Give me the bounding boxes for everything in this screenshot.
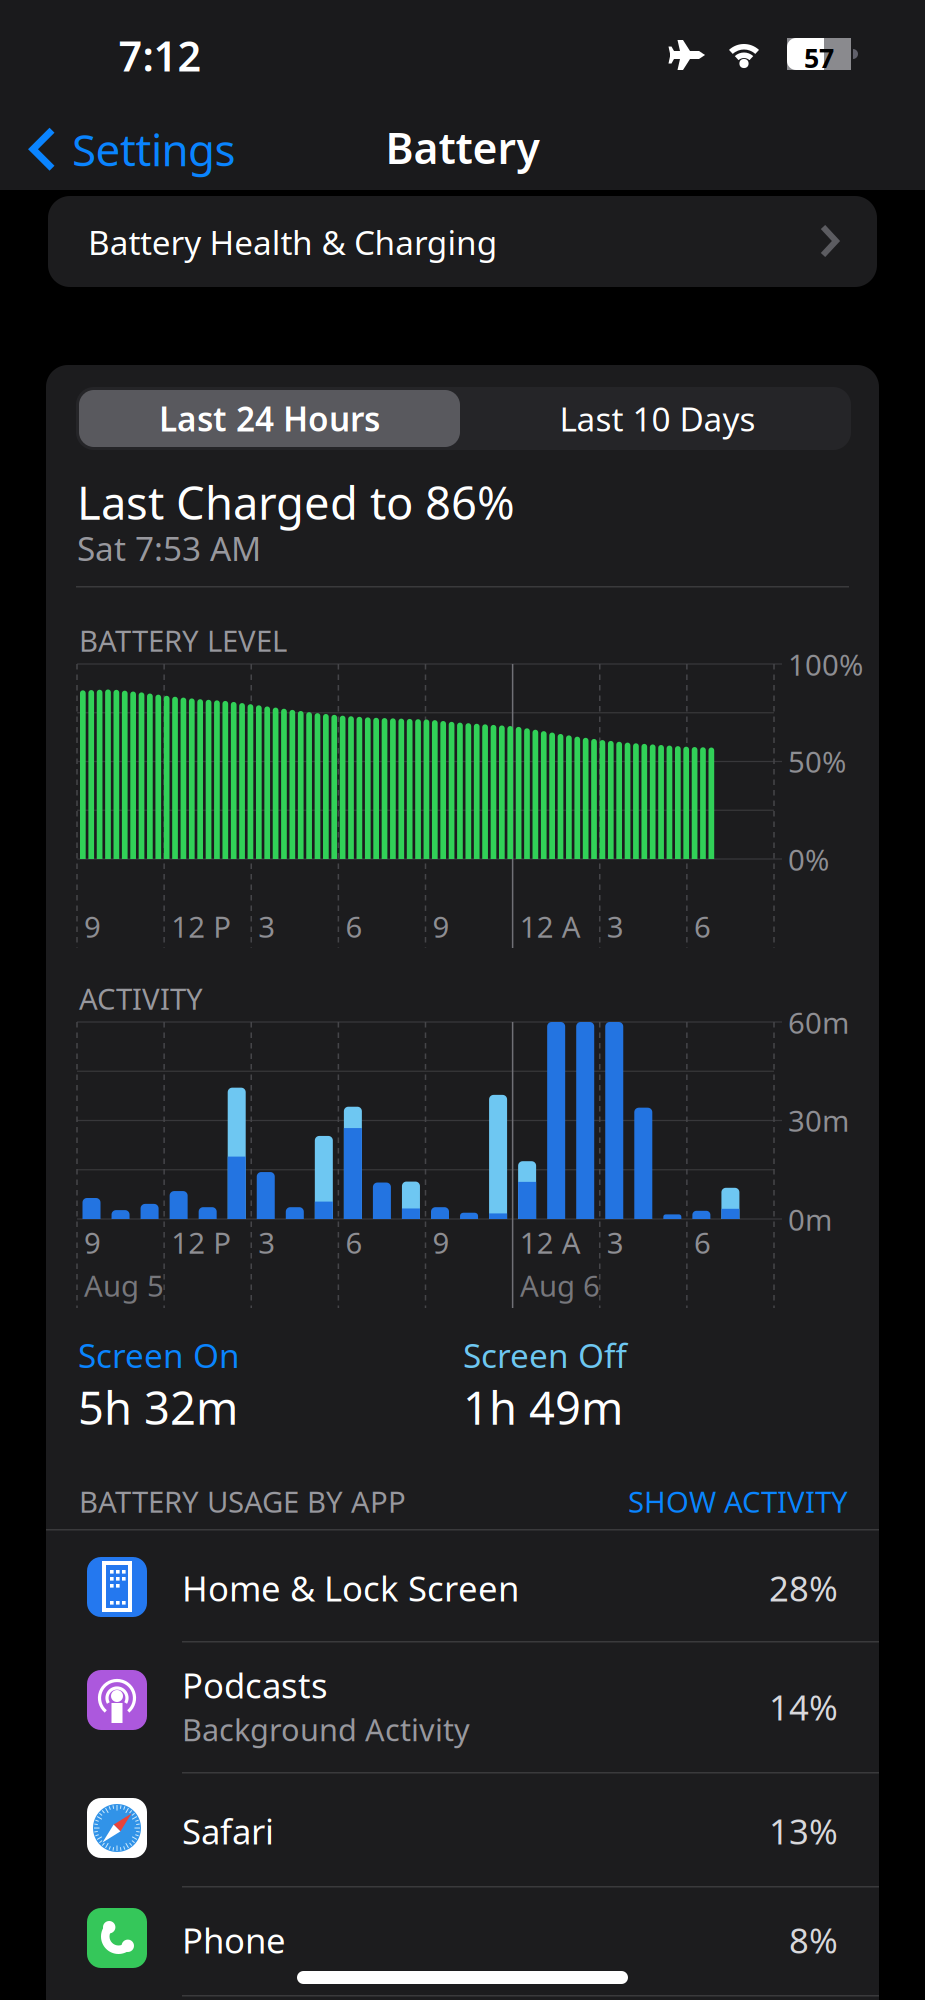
staticText: Aug 6 (520, 1266, 600, 1305)
staticText: Aug 5 (84, 1266, 164, 1305)
staticText: 57 (804, 40, 834, 75)
button[interactable]: Podcasts (46, 1643, 879, 1773)
staticText: 100% (788, 645, 863, 684)
staticText: 6 (694, 1223, 711, 1262)
button[interactable]: Back (28, 120, 235, 178)
staticText: 7:12 (118, 28, 201, 83)
button[interactable]: Home & Lock Screen (46, 1530, 879, 1642)
staticText: Background Activity (182, 1709, 470, 1750)
staticText: 28% (769, 1565, 838, 1611)
staticText: Screen On (78, 1333, 240, 1377)
staticText: 13% (769, 1808, 838, 1854)
staticText: 9 (432, 907, 449, 946)
button[interactable]: Battery Health & Charging (48, 196, 877, 287)
staticText: 1h 49m (463, 1377, 623, 1437)
staticText: 50% (788, 742, 846, 781)
staticText: 8% (789, 1917, 838, 1963)
staticText: Battery (385, 119, 539, 176)
staticText: 0m (788, 1200, 832, 1239)
staticText: Last 10 Days (559, 396, 755, 441)
staticText: 30m (788, 1101, 849, 1140)
staticText: 9 (84, 907, 101, 946)
staticText: Sat 7:53 AM (77, 526, 261, 570)
staticText: Home & Lock Screen (182, 1565, 519, 1611)
staticText: 6 (694, 907, 711, 946)
staticText: 5h 32m (78, 1377, 238, 1437)
staticText: Screen Off (463, 1333, 627, 1377)
staticText: Podcasts (182, 1662, 328, 1708)
staticText: 60m (788, 1003, 849, 1042)
button[interactable]: Last 24 Hours (76, 387, 463, 450)
staticText: 12 A (520, 1223, 581, 1262)
staticText: Settings (72, 120, 235, 178)
staticText: 0% (788, 840, 829, 879)
button[interactable]: Phone (46, 1888, 879, 2000)
staticText: BATTERY USAGE BY APP (79, 1482, 406, 1521)
staticText: BATTERY LEVEL (79, 621, 287, 660)
staticText: Safari (182, 1808, 274, 1854)
staticText: 12 P (171, 907, 231, 946)
staticText: 3 (607, 1223, 624, 1262)
button[interactable]: Safari (46, 1774, 879, 1887)
staticText: Phone (182, 1917, 286, 1963)
button[interactable]: SHOW ACTIVITY (548, 1482, 848, 1521)
staticText: 9 (432, 1223, 449, 1262)
staticText: 12 P (171, 1223, 231, 1262)
staticText: SHOW ACTIVITY (628, 1482, 848, 1521)
staticText: 9 (84, 1223, 101, 1262)
staticText: 3 (607, 907, 624, 946)
staticText: Battery Health & Charging (88, 220, 498, 264)
staticText: Last Charged to 86% (77, 472, 515, 532)
staticText: 3 (258, 907, 275, 946)
button[interactable]: Last 10 Days (464, 387, 851, 450)
staticText: 14% (769, 1684, 838, 1730)
staticText: 3 (258, 1223, 275, 1262)
staticText: 6 (345, 1223, 362, 1262)
staticText: 12 A (520, 907, 581, 946)
staticText: Last 24 Hours (159, 396, 380, 441)
staticText: 6 (345, 907, 362, 946)
staticText: ACTIVITY (79, 979, 203, 1018)
